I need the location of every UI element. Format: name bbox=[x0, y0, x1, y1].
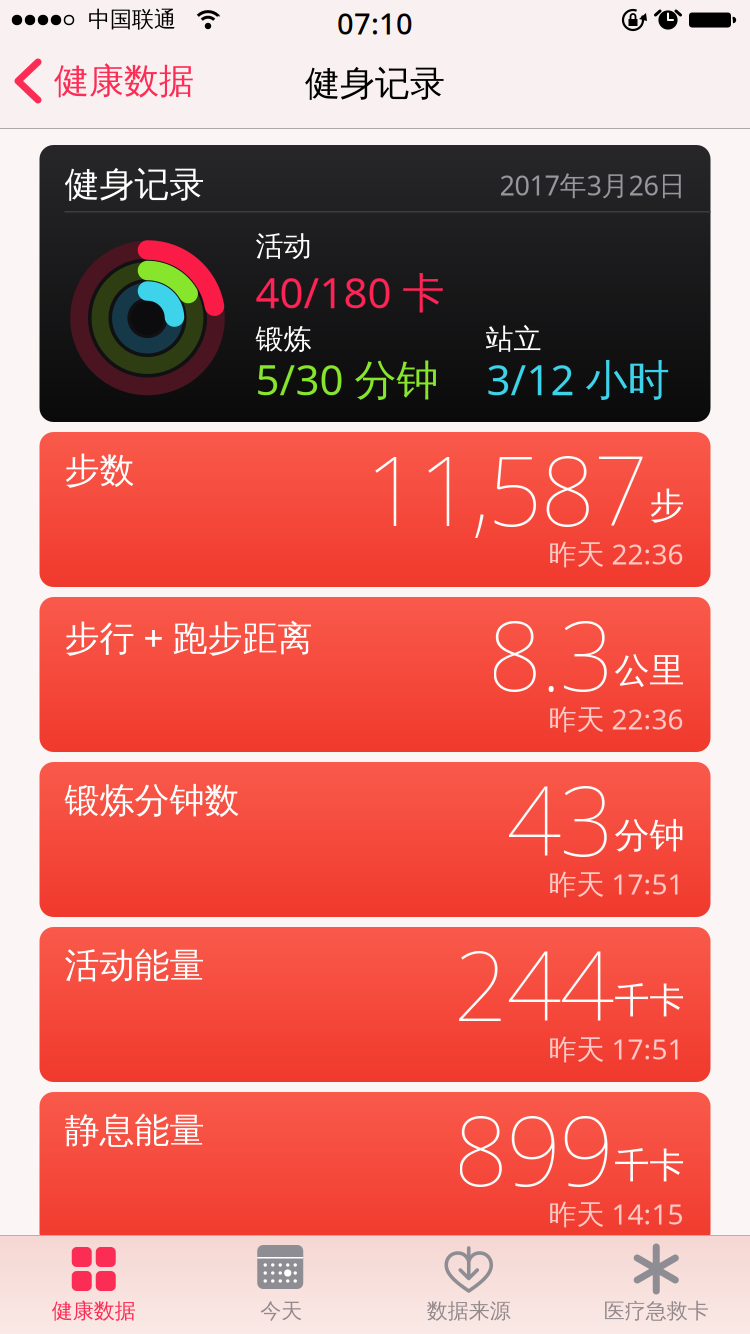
staticText: 中国联通 bbox=[88, 6, 176, 33]
staticText: 静息能量 bbox=[64, 1109, 204, 1152]
staticText: 公里 bbox=[614, 649, 684, 692]
staticText: 昨天 17:51 bbox=[548, 1030, 683, 1067]
button[interactable]: 静息能量 bbox=[39, 1092, 710, 1247]
staticText: 5/30 分钟 bbox=[255, 351, 438, 407]
staticText: 43 bbox=[506, 755, 614, 882]
button[interactable]: 健康数据 bbox=[0, 40, 194, 104]
button[interactable]: 今天 bbox=[187, 1235, 375, 1324]
staticText: 昨天 14:15 bbox=[548, 1195, 683, 1232]
staticText: 健康数据 bbox=[54, 59, 194, 102]
staticText: 40/180 卡 bbox=[255, 264, 444, 320]
staticText: 昨天 17:51 bbox=[548, 865, 683, 902]
staticText: 步数 bbox=[64, 449, 134, 492]
staticText: 活动 bbox=[255, 229, 311, 263]
staticText: 3/12 小时 bbox=[486, 351, 669, 407]
staticText: 健身记录 bbox=[64, 163, 204, 206]
staticText: 899 bbox=[453, 1085, 614, 1212]
staticText: 2017年3月26日 bbox=[499, 167, 685, 203]
button[interactable]: 锻炼分钟数 bbox=[39, 762, 710, 917]
staticText: 8.3 bbox=[487, 590, 614, 717]
staticText: 07:10 bbox=[337, 4, 413, 42]
button[interactable]: 数据来源 bbox=[375, 1235, 562, 1324]
staticText: 医疗急救卡 bbox=[604, 1298, 709, 1324]
staticText: 昨天 22:36 bbox=[548, 535, 683, 572]
staticText: 11,587 bbox=[365, 425, 648, 552]
staticText: 244 bbox=[453, 920, 614, 1047]
button[interactable]: 健康数据 bbox=[0, 1235, 187, 1324]
staticText: 锻炼 bbox=[255, 322, 311, 356]
staticText: 昨天 22:36 bbox=[548, 700, 683, 737]
staticText: 数据来源 bbox=[427, 1298, 511, 1324]
staticText: 今天 bbox=[260, 1298, 302, 1324]
staticText: 分钟 bbox=[614, 814, 684, 857]
staticText: 锻炼分钟数 bbox=[64, 779, 239, 822]
staticText: 千卡 bbox=[614, 1144, 684, 1187]
staticText: 步行 + 跑步距离 bbox=[64, 614, 312, 660]
button[interactable]: 活动能量 bbox=[39, 927, 710, 1082]
button[interactable]: 步行 + 跑步距离 bbox=[39, 597, 710, 752]
staticText: 健身记录 bbox=[305, 62, 445, 105]
staticText: 站立 bbox=[485, 322, 541, 356]
button[interactable]: 健身记录 bbox=[39, 145, 710, 422]
staticText: 活动能量 bbox=[64, 944, 204, 987]
staticText: 千卡 bbox=[614, 979, 684, 1022]
button[interactable]: 步数 bbox=[39, 432, 710, 587]
staticText: 健康数据 bbox=[52, 1298, 136, 1324]
button[interactable]: 医疗急救卡 bbox=[562, 1235, 750, 1324]
staticText: 步 bbox=[649, 484, 684, 527]
